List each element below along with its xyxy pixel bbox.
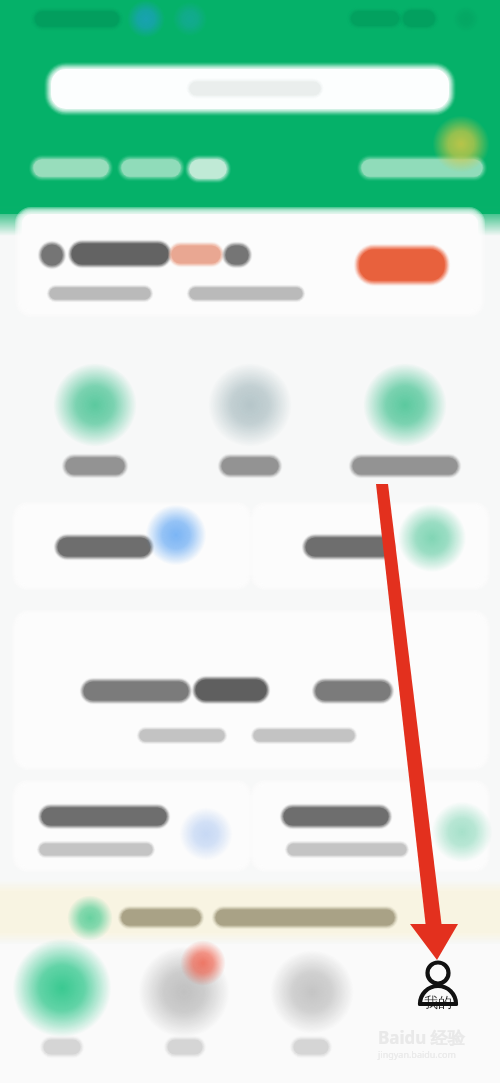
other: Annotation arrow — [0, 0, 500, 1083]
staticText: jingyan.baidu.com — [378, 1048, 456, 1060]
button[interactable]: 我的 — [375, 948, 500, 1028]
staticText: Baidu 经验 — [378, 1026, 465, 1049]
staticText: 我的 — [424, 994, 452, 1012]
